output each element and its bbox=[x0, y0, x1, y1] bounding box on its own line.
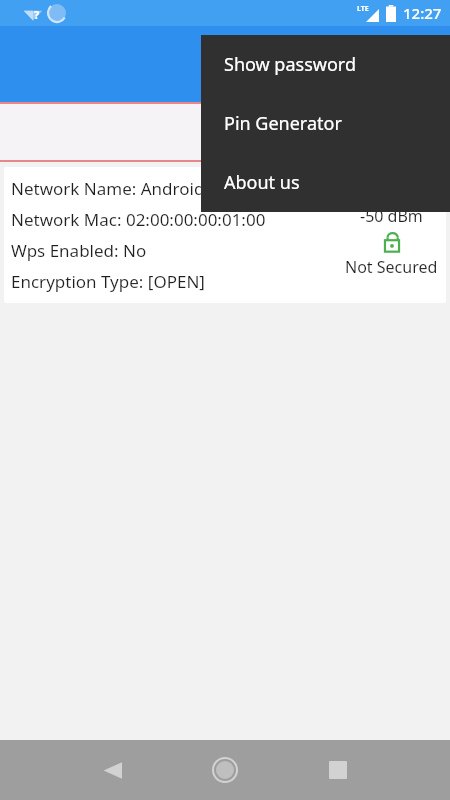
staticText: Encryption Type: [OPEN] bbox=[11, 270, 205, 293]
staticText: -50 dBm bbox=[360, 205, 423, 227]
staticText: 12:27 bbox=[403, 3, 442, 23]
button[interactable]: Back bbox=[88, 746, 136, 794]
button[interactable]: Show password bbox=[201, 35, 450, 94]
staticText: ? bbox=[34, 7, 40, 22]
button[interactable]: Pin Generator bbox=[201, 94, 450, 153]
other: Open network, not secured bbox=[381, 231, 403, 253]
staticText: Wps Enabled: No bbox=[11, 239, 147, 262]
staticText: Show password bbox=[224, 52, 356, 77]
button[interactable]: About us bbox=[201, 153, 450, 212]
button[interactable]: Recent apps bbox=[314, 746, 362, 794]
staticText: Network Name: Android bbox=[11, 177, 205, 200]
staticText: About us bbox=[224, 170, 300, 195]
staticText: Wps bbox=[202, 49, 249, 79]
button[interactable]: Network Name: Android bbox=[4, 167, 446, 303]
button[interactable]: Home bbox=[201, 746, 249, 794]
staticText: Pin Generator bbox=[224, 111, 342, 136]
staticText: Not Secured bbox=[345, 256, 438, 278]
button[interactable] bbox=[0, 104, 450, 160]
staticText: Network Mac: 02:00:00:00:01:00 bbox=[11, 208, 266, 231]
staticText: LTE bbox=[357, 4, 369, 14]
